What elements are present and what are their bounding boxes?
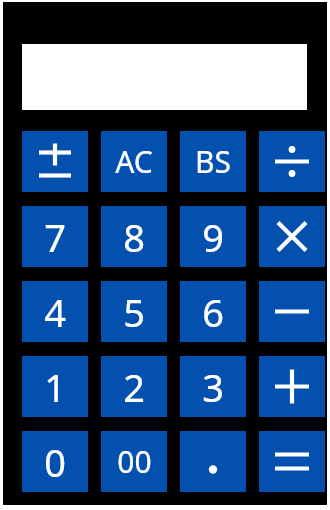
button[interactable]: 9 (180, 206, 246, 267)
button[interactable]: 6 (180, 281, 246, 342)
staticText: 7 (44, 211, 66, 263)
staticText: BS (195, 141, 231, 182)
button[interactable]: 2 (101, 356, 167, 417)
button[interactable]: 00 (101, 431, 167, 492)
staticText: 2 (123, 361, 145, 413)
button[interactable]: Add (259, 356, 325, 417)
button[interactable]: Equals (259, 431, 325, 492)
staticText: 6 (202, 286, 224, 338)
button[interactable]: AC (101, 131, 167, 192)
button[interactable]: 5 (101, 281, 167, 342)
button[interactable]: 7 (22, 206, 88, 267)
staticText: 4 (44, 286, 66, 338)
staticText: 00 (117, 441, 152, 482)
button[interactable]: BS (180, 131, 246, 192)
staticText: 1 (44, 361, 66, 413)
staticText: 3 (202, 361, 224, 413)
button[interactable]: 1 (22, 356, 88, 417)
button[interactable]: 3 (180, 356, 246, 417)
button[interactable]: Decimal point (180, 431, 246, 492)
button[interactable]: 8 (101, 206, 167, 267)
button[interactable]: Divide (259, 131, 325, 192)
staticText: 5 (123, 286, 145, 338)
button[interactable]: 4 (22, 281, 88, 342)
staticText: 8 (123, 211, 145, 263)
staticText: 9 (202, 211, 224, 263)
button[interactable]: Subtract (259, 281, 325, 342)
button[interactable]: Plus minus sign (22, 131, 88, 192)
button[interactable]: 0 (22, 431, 88, 492)
button[interactable]: Multiply (259, 206, 325, 267)
staticText: 0 (44, 436, 66, 488)
staticText: AC (115, 141, 153, 182)
